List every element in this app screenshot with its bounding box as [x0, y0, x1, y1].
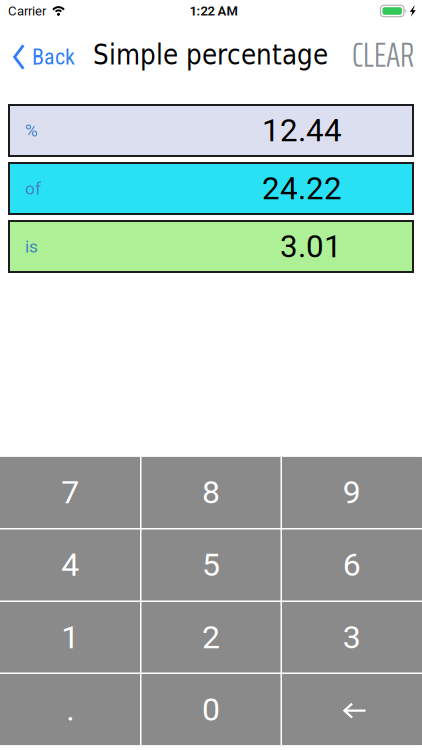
staticText: 2	[202, 618, 220, 656]
button[interactable]: Delete	[282, 674, 421, 745]
button[interactable]: 1	[0, 602, 140, 673]
staticText: 1:22 AM	[189, 3, 237, 19]
button[interactable]: 4	[0, 529, 140, 600]
button[interactable]: %	[9, 105, 413, 156]
button[interactable]: 9	[282, 457, 421, 528]
button[interactable]: 7	[0, 457, 140, 528]
staticText: Carrier	[8, 3, 46, 19]
staticText: is	[25, 236, 38, 257]
staticText: 6	[343, 546, 361, 583]
button[interactable]: 0	[141, 674, 281, 745]
button[interactable]: 3	[282, 602, 421, 673]
button[interactable]: is	[9, 221, 413, 272]
staticText: 3	[343, 618, 361, 656]
button[interactable]: CLEAR	[342, 33, 422, 77]
staticText: 8	[202, 474, 220, 511]
staticText: 4	[61, 546, 79, 583]
staticText: Back	[32, 44, 75, 70]
button[interactable]: 5	[141, 529, 281, 600]
staticText: 12.44	[262, 112, 342, 149]
staticText: .	[66, 691, 74, 728]
button[interactable]: of	[9, 163, 413, 214]
staticText: 1	[61, 618, 79, 656]
button[interactable]: 6	[282, 529, 421, 600]
staticText: 9	[343, 474, 361, 511]
staticText: 3.01	[280, 228, 342, 265]
staticText: 7	[61, 474, 79, 511]
staticText: Simple percentage	[93, 39, 328, 71]
staticText: CLEAR	[352, 28, 414, 82]
staticText: %	[25, 120, 38, 141]
button[interactable]: .	[0, 674, 140, 745]
button[interactable]: Back	[0, 33, 85, 77]
staticText: 24.22	[262, 170, 342, 207]
staticText: of	[25, 178, 41, 199]
staticText: 5	[202, 546, 220, 583]
button[interactable]: 2	[141, 602, 281, 673]
button[interactable]: 8	[141, 457, 281, 528]
staticText: 0	[202, 691, 220, 728]
